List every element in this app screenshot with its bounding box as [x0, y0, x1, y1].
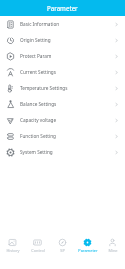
staticText: SP [60, 248, 65, 253]
staticText: Origin Setting [20, 37, 114, 43]
button[interactable]: System Setting [0, 144, 125, 160]
staticText: Function Setting [20, 133, 114, 139]
button[interactable]: SP [50, 235, 75, 253]
staticText: Control [31, 248, 45, 253]
button[interactable]: Balance Settings [0, 96, 125, 112]
button[interactable]: History [0, 235, 25, 253]
staticText: System Setting [20, 149, 114, 155]
staticText: Balance Settings [20, 101, 114, 107]
staticText: Parameter [47, 4, 78, 12]
button[interactable]: Control [25, 235, 50, 253]
button[interactable]: Origin Setting [0, 32, 125, 48]
button[interactable]: Basic Information [0, 16, 125, 32]
staticText: Mine [108, 248, 118, 253]
button[interactable]: Capacity voltage [0, 112, 125, 128]
staticText: Parameter [78, 248, 98, 253]
button[interactable]: Current Settings [0, 64, 125, 80]
staticText: Protect Param [20, 53, 114, 59]
button[interactable]: Parameter [75, 235, 100, 253]
button[interactable]: Function Setting [0, 128, 125, 144]
button[interactable]: Mine [100, 235, 125, 253]
button[interactable]: Protect Param [0, 48, 125, 64]
staticText: Basic Information [20, 21, 114, 27]
button[interactable]: Temperature Settings [0, 80, 125, 96]
staticText: History [6, 248, 20, 253]
staticText: Temperature Settings [20, 85, 114, 91]
staticText: Capacity voltage [20, 117, 114, 123]
staticText: Current Settings [20, 69, 114, 75]
